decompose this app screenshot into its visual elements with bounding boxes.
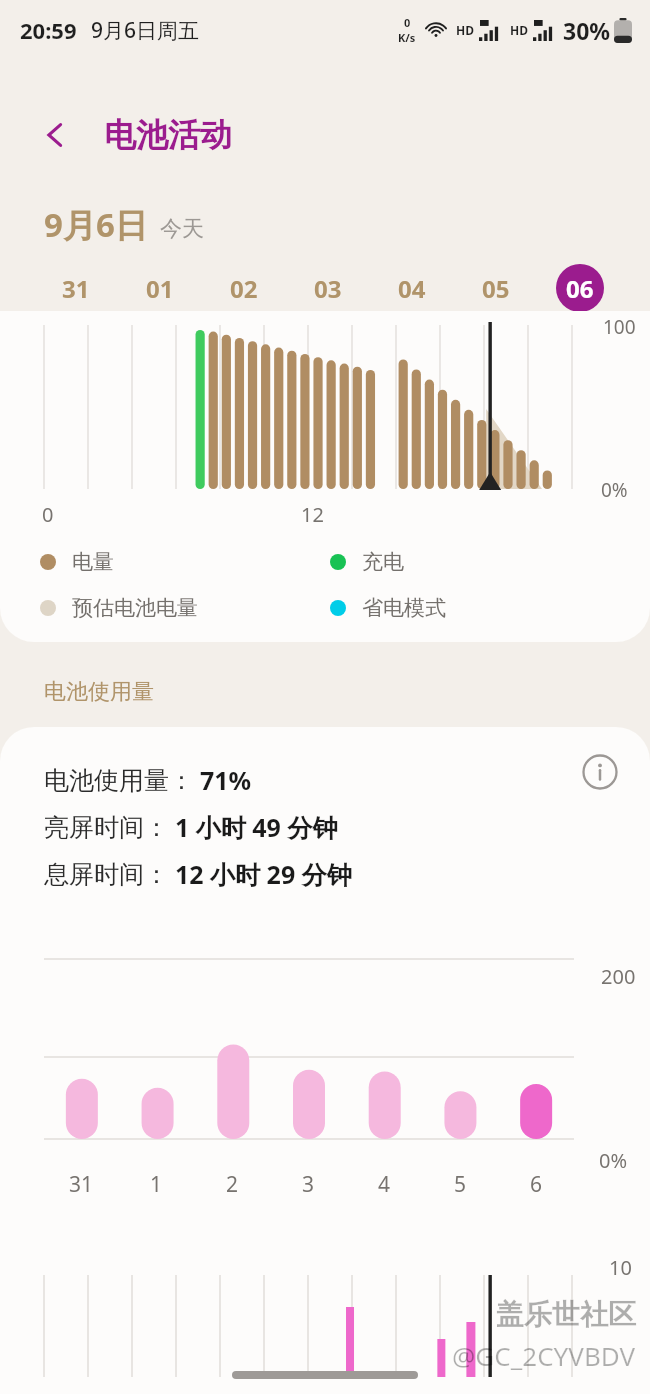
staticText: 0% <box>601 477 628 503</box>
staticText: 今天 <box>160 215 204 243</box>
button[interactable]: 省电模式 <box>330 595 620 621</box>
button[interactable]: 100 <box>0 311 650 642</box>
button[interactable]: 02 <box>202 262 286 314</box>
staticText: 0 <box>404 15 411 30</box>
button[interactable]: 03 <box>286 262 370 314</box>
staticText: 30% <box>563 15 611 46</box>
button[interactable]: 预估电池电量 <box>40 595 330 621</box>
staticText: 5 <box>454 1170 467 1199</box>
staticText: 2 <box>226 1170 239 1199</box>
staticText: 04 <box>398 272 426 305</box>
staticText: 12 小时 29 分钟 <box>175 857 352 891</box>
staticText: 20:59 <box>20 15 77 45</box>
staticText: 盖乐世社区 <box>496 1297 636 1332</box>
staticText: 0% <box>599 1147 628 1174</box>
staticText: 01 <box>146 272 174 305</box>
button[interactable]: 电量 <box>40 549 330 575</box>
staticText: 1 <box>150 1170 163 1199</box>
button[interactable]: 04 <box>370 262 454 314</box>
staticText: 10 <box>609 1254 632 1281</box>
staticText: K/s <box>398 30 416 45</box>
button[interactable]: 01 <box>118 262 202 314</box>
staticText: 电池使用量： <box>44 765 194 796</box>
staticText: 3 <box>302 1170 315 1199</box>
staticText: 充电 <box>362 549 404 575</box>
button[interactable]: 06 <box>538 262 622 314</box>
button[interactable]: 31 <box>34 262 118 314</box>
staticText: 12 <box>301 501 324 528</box>
staticText: 亮屏时间： <box>44 812 169 843</box>
staticText: 电量 <box>72 549 114 575</box>
staticText: 预估电池电量 <box>72 595 198 621</box>
staticText: 31 <box>69 1170 94 1199</box>
staticText: 31 <box>62 272 90 305</box>
staticText: 省电模式 <box>362 595 446 621</box>
staticText: 息屏时间： <box>44 859 169 890</box>
staticText: 电池活动 <box>104 115 232 155</box>
staticText: 02 <box>230 272 258 305</box>
staticText: 100 <box>603 314 636 340</box>
staticText: @GC_2CYVBDV <box>452 1338 636 1373</box>
staticText: 0 <box>42 501 54 528</box>
staticText: 71% <box>200 763 252 797</box>
button[interactable]: Back <box>24 104 86 166</box>
button[interactable]: 充电 <box>330 549 620 575</box>
staticText: 9月6日周五 <box>91 16 200 45</box>
staticText: 4 <box>378 1170 391 1199</box>
staticText: HD <box>456 22 474 38</box>
staticText: 1 小时 49 分钟 <box>175 810 338 844</box>
button[interactable]: Information <box>578 750 622 794</box>
staticText: 03 <box>314 272 342 305</box>
staticText: 200 <box>601 963 636 990</box>
staticText: 电池使用量 <box>44 678 154 706</box>
button[interactable]: 05 <box>454 262 538 314</box>
button[interactable]: 电池使用量： <box>0 727 650 1394</box>
staticText: 05 <box>482 272 510 305</box>
staticText: 06 <box>566 272 594 305</box>
staticText: HD <box>510 22 528 38</box>
staticText: 9月6日 <box>44 202 148 247</box>
staticText: 6 <box>530 1170 543 1199</box>
